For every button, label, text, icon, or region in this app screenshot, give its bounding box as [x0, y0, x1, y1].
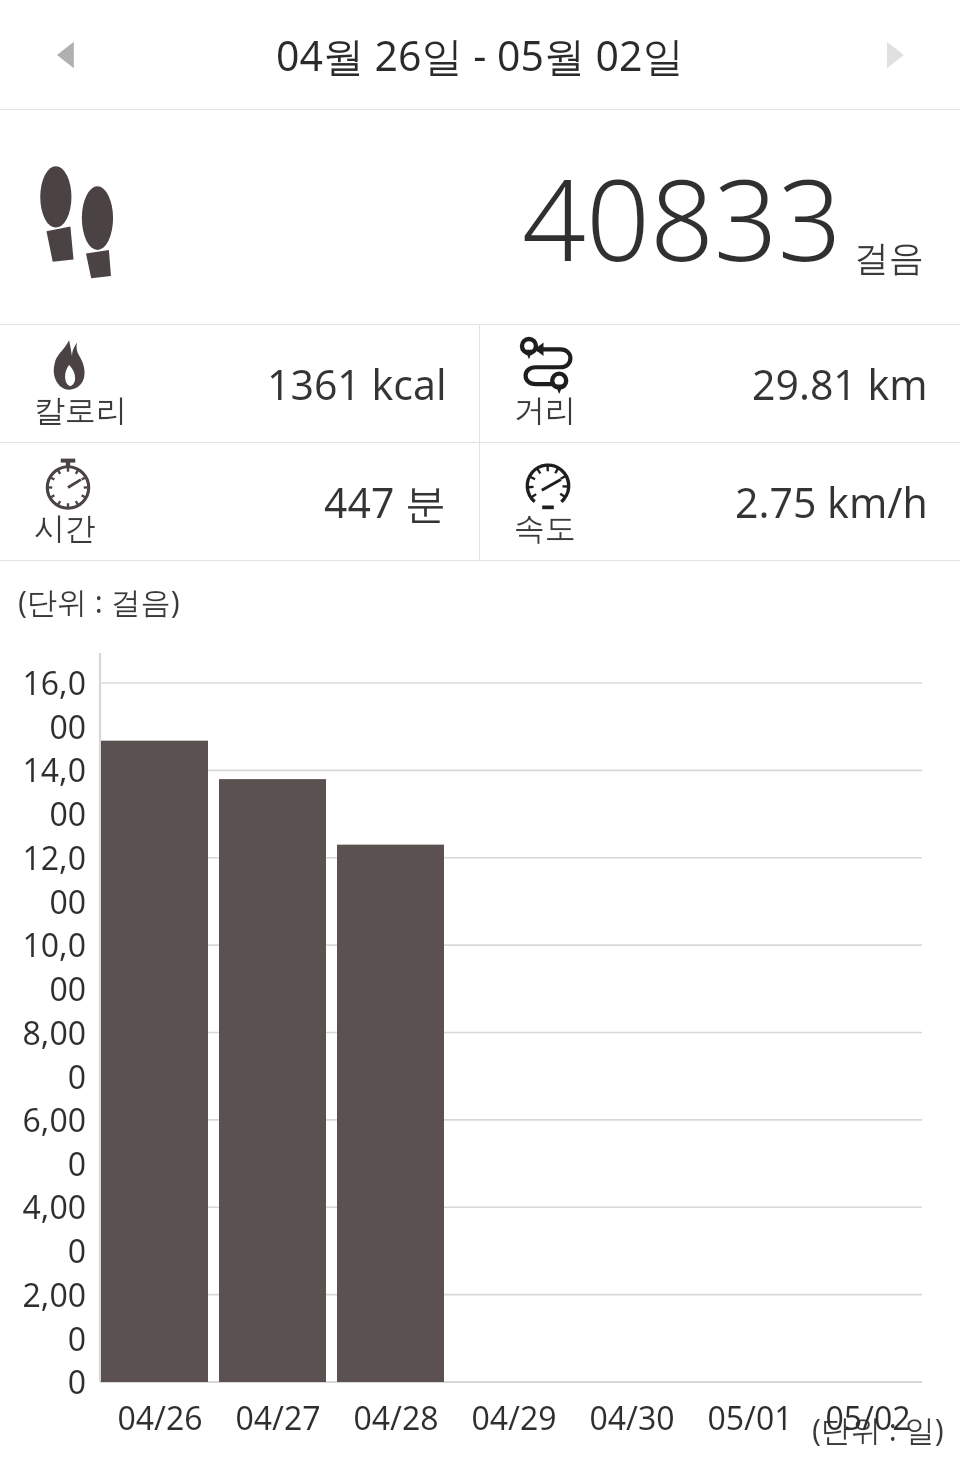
button[interactable]: 칼로리	[0, 325, 479, 442]
staticText: 2,000	[8, 1273, 86, 1361]
button[interactable]: 거리	[480, 325, 960, 442]
staticText: 12,000	[8, 836, 86, 924]
staticText: 1361 kcal	[267, 356, 447, 412]
staticText: 속도	[514, 509, 576, 548]
button[interactable]: Previous week	[22, 12, 108, 98]
staticText: 시간	[34, 509, 96, 548]
staticText: 04/29	[455, 1396, 573, 1440]
staticText: 04/26	[101, 1396, 219, 1440]
staticText: 05/01	[691, 1396, 809, 1440]
button[interactable]: Next week	[852, 12, 938, 98]
staticText: 29.81 km	[752, 356, 928, 412]
staticText: 8,000	[8, 1011, 86, 1099]
staticText: 10,000	[8, 923, 86, 1011]
staticText: 447 분	[324, 474, 447, 530]
staticText: 6,000	[8, 1098, 86, 1186]
staticText: 04월 26일 - 05월 02일	[276, 27, 684, 83]
button[interactable]: Steps	[0, 110, 960, 324]
staticText: (단위 : 일)	[812, 1409, 944, 1450]
staticText: 2.75 km/h	[735, 474, 928, 530]
staticText: 04/30	[573, 1396, 691, 1440]
staticText: 04/28	[337, 1396, 455, 1440]
staticText: (단위 : 걸음)	[18, 581, 180, 622]
staticText: 0	[8, 1360, 86, 1404]
staticText: 걸음	[854, 236, 924, 280]
other: Steps	[34, 158, 138, 276]
staticText: 칼로리	[34, 391, 127, 430]
staticText: 거리	[514, 391, 576, 430]
staticText: 14,000	[8, 748, 86, 836]
button[interactable]: 시간	[0, 443, 479, 560]
button[interactable]: 속도	[480, 443, 960, 560]
staticText: 4,000	[8, 1185, 86, 1273]
staticText: 05/02	[809, 1396, 927, 1440]
staticText: 04/27	[219, 1396, 337, 1440]
staticText: 16,000	[8, 661, 86, 749]
staticText: 40833	[522, 141, 842, 294]
